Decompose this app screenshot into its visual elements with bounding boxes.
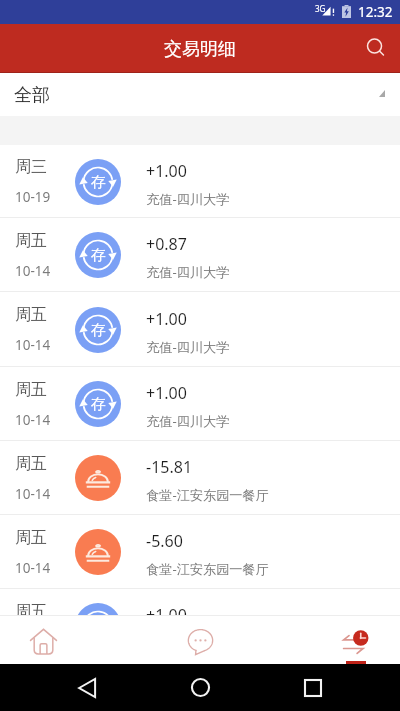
staticText: 周五 — [15, 231, 47, 251]
staticText: 充值-四川大学 — [146, 263, 230, 281]
button[interactable]: 周五 — [0, 292, 400, 367]
button[interactable]: Messages — [87, 616, 226, 664]
button[interactable]: Recents — [289, 664, 337, 711]
button[interactable]: 周五 — [0, 515, 400, 589]
button[interactable]: 全部 — [0, 73, 400, 116]
staticText: +1.00 — [146, 382, 187, 404]
staticText: 10-19 — [15, 188, 51, 206]
button[interactable]: 周三 — [0, 145, 400, 218]
button[interactable]: 周五 — [0, 367, 400, 441]
staticText: 食堂-江安东园一餐厅 — [146, 486, 269, 504]
staticText: 10-14 — [15, 411, 51, 429]
staticText: 3G — [315, 3, 326, 14]
button[interactable]: Back — [63, 664, 111, 711]
staticText: 10-14 — [15, 559, 51, 577]
staticText: -5.60 — [146, 530, 183, 552]
staticText: 存 — [91, 246, 106, 265]
staticText: 充值-四川大学 — [146, 338, 230, 356]
staticText: 交易明细 — [164, 38, 236, 61]
staticText: +1.00 — [146, 604, 187, 615]
staticText: +1.00 — [146, 308, 187, 330]
staticText: 周五 — [15, 602, 47, 615]
staticText: 12:32 — [358, 3, 393, 21]
staticText: 充值-四川大学 — [146, 412, 230, 430]
button[interactable]: 周五 — [0, 589, 400, 615]
staticText: 周五 — [15, 528, 47, 548]
staticText: 食堂-江安东园一餐厅 — [146, 560, 269, 578]
staticText: +1.00 — [146, 160, 187, 182]
button[interactable]: Transactions — [313, 616, 400, 664]
staticText: 周五 — [15, 380, 47, 400]
staticText: 周三 — [15, 157, 47, 177]
staticText: 存 — [91, 321, 106, 340]
staticText: 周五 — [15, 454, 47, 474]
button[interactable]: 周五 — [0, 218, 400, 292]
button[interactable]: 周五 — [0, 441, 400, 515]
button[interactable]: Home — [0, 616, 87, 664]
staticText: 10-14 — [15, 336, 51, 354]
button[interactable]: Search — [352, 28, 392, 68]
staticText: -15.81 — [146, 456, 193, 478]
staticText: 10-14 — [15, 485, 51, 503]
staticText: 周五 — [15, 305, 47, 325]
button[interactable]: Home — [176, 664, 224, 711]
staticText: +0.87 — [146, 233, 187, 255]
staticText: 存 — [91, 173, 106, 192]
staticText: 10-14 — [15, 262, 51, 280]
staticText: 存 — [91, 395, 106, 414]
staticText: 全部 — [14, 84, 50, 107]
staticText: 充值-四川大学 — [146, 190, 230, 208]
